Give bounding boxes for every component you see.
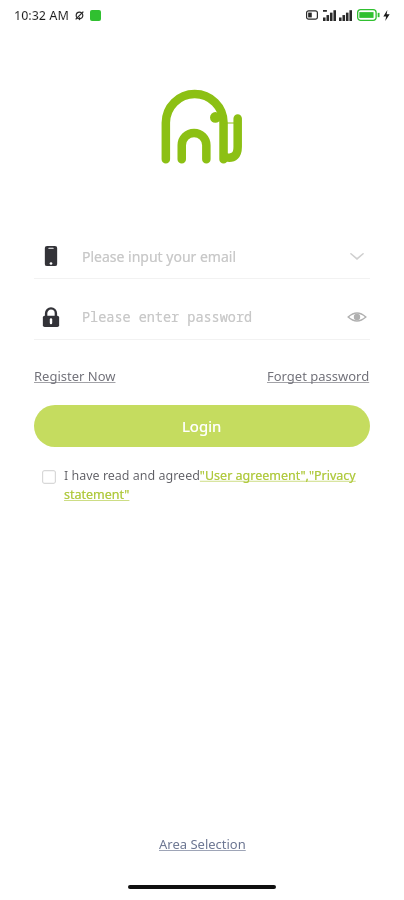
- staticText: Area Selection: [159, 835, 246, 853]
- button[interactable]: Login: [34, 405, 370, 447]
- button[interactable]: I have read and agreed"User agreement","…: [64, 467, 370, 503]
- button[interactable]: Please input your email: [38, 234, 374, 278]
- button[interactable]: Choose account: [340, 239, 374, 273]
- staticText: Register Now: [34, 367, 116, 385]
- button[interactable]: Show password: [340, 300, 374, 334]
- staticText: 10:32 AM: [14, 7, 69, 24]
- staticText: Forget password: [267, 367, 370, 385]
- staticText: Please input your email: [82, 247, 237, 266]
- button[interactable]: Register Now: [34, 365, 116, 387]
- button[interactable]: Agree to terms: [42, 470, 56, 484]
- button[interactable]: Area Selection: [153, 829, 252, 859]
- button[interactable]: Forget password: [267, 365, 370, 387]
- staticText: Login: [182, 416, 222, 436]
- button[interactable]: Please enter password: [38, 295, 374, 339]
- staticText: I have read and agreed"User agreement","…: [64, 467, 370, 503]
- staticText: Please enter password: [82, 308, 253, 326]
